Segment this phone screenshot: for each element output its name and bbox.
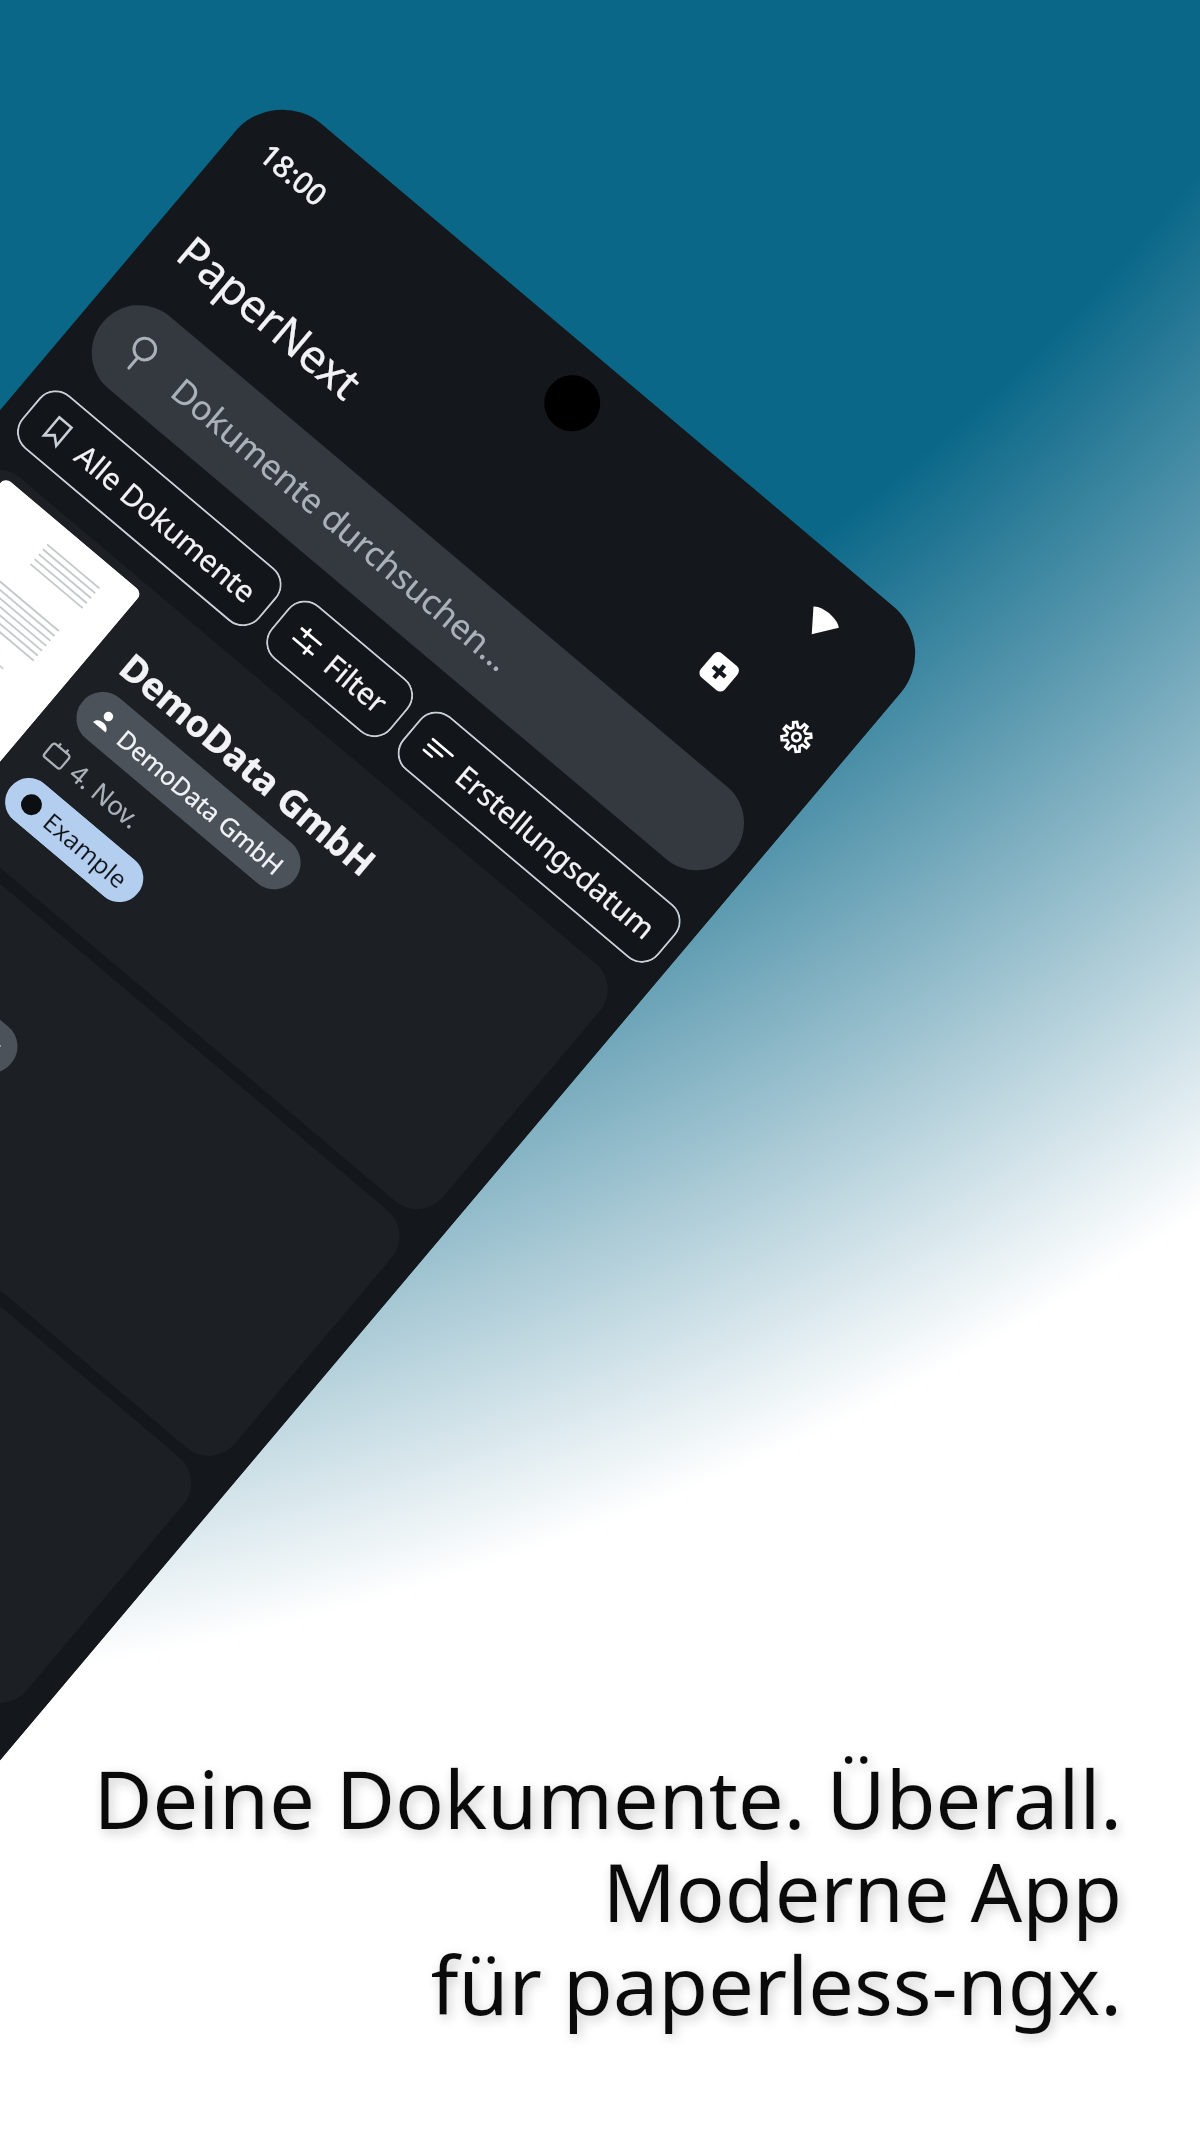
button[interactable]: DemoData GmbH xyxy=(66,681,311,900)
staticText: Deine Dokumente. Überall. Moderne App fü… xyxy=(0,1742,1122,2039)
staticText: DemoData GmbH xyxy=(110,641,388,886)
button[interactable]: Settings xyxy=(740,680,853,792)
staticText: 18:00 xyxy=(251,134,336,215)
button[interactable]: Beispiel Vertrag xyxy=(0,950,205,1717)
staticText: Demo KG xyxy=(0,968,9,1066)
staticText: Dokumente durchsuchen... xyxy=(162,367,522,681)
staticText: Example xyxy=(36,804,136,896)
staticText: 4. Nov. xyxy=(63,755,149,836)
button[interactable]: Alle Dokumente xyxy=(8,381,291,635)
button[interactable]: Example xyxy=(0,768,153,912)
button[interactable]: Filter xyxy=(257,591,422,746)
button[interactable]: Demo KG xyxy=(0,928,28,1084)
button[interactable]: DemoData GmbH xyxy=(0,456,622,1223)
staticText: DemoData GmbH xyxy=(110,722,292,882)
staticText: PaperNext xyxy=(165,221,375,412)
button[interactable]: Dokumente durchsuchen... xyxy=(72,286,763,890)
button[interactable]: Demo xyxy=(0,703,413,1470)
button[interactable]: Add document xyxy=(663,615,775,727)
staticText: Erstellungsdatum xyxy=(447,756,665,948)
staticText: Alle Dokumente xyxy=(67,435,266,612)
button[interactable]: Erstellungsdatum xyxy=(388,702,690,972)
staticText: Filter xyxy=(316,645,397,723)
